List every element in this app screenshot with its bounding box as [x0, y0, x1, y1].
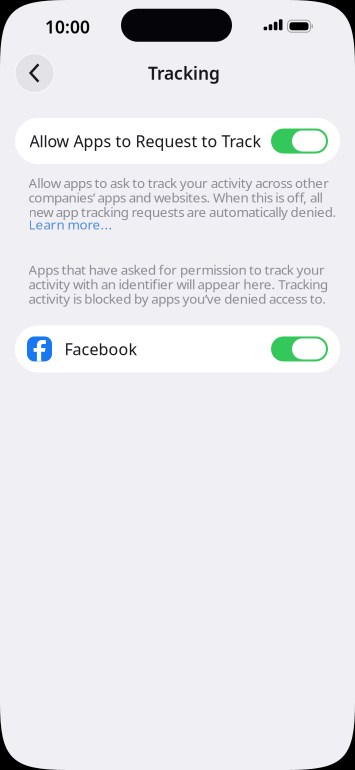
button[interactable]: Allow Apps to Request to Track — [15, 118, 340, 164]
button[interactable]: Learn more... — [28, 218, 348, 231]
staticText: Tracking — [148, 61, 220, 84]
button[interactable]: Back — [14, 53, 54, 93]
staticText: Allow apps to ask to track your activity… — [28, 174, 336, 221]
staticText: Allow Apps to Request to Track — [29, 130, 261, 152]
staticText: Apps that have asked for permission to t… — [28, 261, 328, 307]
staticText: 10:00 — [45, 15, 90, 38]
button[interactable]: Facebook — [15, 325, 340, 372]
staticText: Learn more... — [28, 215, 112, 233]
staticText: Facebook — [64, 338, 137, 359]
